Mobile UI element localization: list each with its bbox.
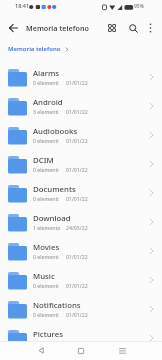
staticText: 3 elementi: [33, 108, 59, 115]
button[interactable]: [67, 341, 95, 360]
button[interactable]: [104, 20, 120, 36]
staticText: Memoria telefono: [8, 45, 61, 53]
staticText: DCIM: [33, 155, 54, 166]
staticText: 0 elementi: [33, 195, 59, 202]
staticText: 0 elementi: [33, 282, 59, 289]
staticText: 95%: [134, 3, 144, 10]
staticText: 01/01/22: [66, 195, 88, 202]
staticText: 0 elementi: [33, 79, 59, 86]
staticText: Documents: [33, 184, 76, 195]
staticText: Audiobooks: [33, 126, 78, 137]
button[interactable]: Notifications: [0, 294, 162, 323]
staticText: 24/05/22: [66, 224, 88, 231]
button[interactable]: Documents: [0, 178, 162, 207]
button[interactable]: DCIM: [0, 149, 162, 178]
staticText: Download: [33, 213, 71, 224]
button[interactable]: Movies: [0, 236, 162, 265]
button[interactable]: Audiobooks: [0, 120, 162, 149]
staticText: 01/01/22: [66, 253, 88, 260]
button[interactable]: [27, 341, 55, 360]
staticText: 01/01/22: [66, 340, 88, 347]
staticText: 01/01/22: [66, 311, 88, 318]
staticText: 0 elementi: [33, 311, 59, 318]
button[interactable]: Memoria telefono: [8, 45, 65, 53]
staticText: 0 elementi: [33, 166, 59, 173]
staticText: Android: [33, 97, 63, 108]
staticText: 01/01/22: [66, 282, 88, 289]
staticText: 01/01/22: [66, 137, 88, 144]
button[interactable]: [125, 20, 141, 36]
staticText: 01/01/22: [66, 79, 88, 86]
staticText: 0 elementi: [33, 137, 59, 144]
button[interactable]: Music: [0, 265, 162, 294]
button[interactable]: Alarms: [0, 62, 162, 91]
button[interactable]: Download: [0, 207, 162, 236]
staticText: 0 elementi: [33, 253, 59, 260]
button[interactable]: [108, 341, 136, 360]
staticText: Notifications: [33, 300, 81, 311]
staticText: Memoria telefono: [26, 23, 89, 33]
button[interactable]: [2, 14, 24, 42]
staticText: Pictures: [33, 329, 63, 340]
button[interactable]: [142, 20, 158, 36]
staticText: Alarms: [33, 68, 60, 79]
staticText: Music: [33, 271, 55, 282]
staticText: 01/01/22: [66, 166, 88, 173]
staticText: 01/01/22: [66, 108, 88, 115]
staticText: 1 elemento: [33, 224, 61, 231]
staticText: 18:41: [15, 2, 30, 9]
button[interactable]: Pictures: [0, 323, 162, 352]
staticText: Movies: [33, 242, 60, 253]
button[interactable]: Android: [0, 91, 162, 120]
staticText: 0 elementi: [33, 340, 59, 347]
